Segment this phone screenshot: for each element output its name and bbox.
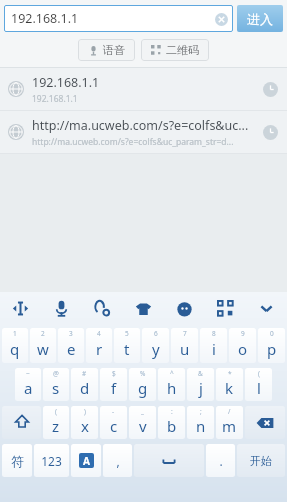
button[interactable]: # (71, 368, 98, 401)
staticText: ^ (170, 369, 174, 378)
staticText: z (52, 416, 60, 436)
staticText: _ (141, 407, 144, 416)
staticText: n (196, 416, 206, 436)
staticText: ; (200, 407, 202, 416)
staticText: b (167, 416, 177, 436)
staticText: 192.168.1.1 (32, 74, 100, 91)
staticText: 二维码 (166, 43, 199, 57)
staticText: % (140, 369, 146, 378)
button[interactable]: Fill in (257, 119, 283, 145)
staticText: v (139, 416, 147, 436)
staticText: : (171, 407, 173, 416)
staticText: * (228, 369, 232, 378)
staticText: m (222, 416, 237, 436)
button[interactable]: 192.168.1.1 (0, 68, 287, 110)
button[interactable]: 1 (2, 328, 28, 363)
staticText: / (228, 407, 231, 416)
button[interactable]: 6 (142, 328, 169, 363)
staticText: u (180, 339, 190, 359)
staticText: j (199, 378, 203, 398)
button[interactable]: % (129, 368, 156, 401)
staticText: A (83, 454, 90, 468)
staticText: e (67, 339, 76, 359)
button[interactable]: Language (71, 444, 101, 477)
staticText: 6 (154, 329, 158, 338)
button[interactable]: ( (245, 368, 272, 401)
button[interactable]: 符 (2, 444, 32, 477)
button[interactable]: 5 (114, 328, 140, 363)
button[interactable]: - (100, 406, 127, 439)
button[interactable]: 2 (30, 328, 56, 363)
staticText: ~ (26, 369, 30, 378)
button[interactable]: Attach (82, 292, 123, 325)
button[interactable]: . (206, 444, 235, 477)
button[interactable]: Fill in (257, 76, 283, 102)
staticText: ( (55, 407, 57, 416)
button[interactable]: 0 (258, 328, 285, 363)
staticText: k (225, 378, 234, 398)
staticText: q (10, 339, 20, 359)
staticText: s (52, 378, 60, 398)
button[interactable]: : (158, 406, 185, 439)
button[interactable]: & (187, 368, 214, 401)
staticText: 192.168.1.1 (32, 93, 78, 105)
button[interactable]: / (216, 406, 243, 439)
button[interactable]: Voice (41, 292, 82, 325)
button[interactable]: 123 (34, 444, 69, 477)
button[interactable]: Hide keyboard (246, 292, 287, 325)
staticText: ( (258, 369, 260, 378)
button[interactable]: ( (43, 406, 69, 439)
button[interactable]: , (103, 444, 132, 477)
staticText: h (167, 378, 177, 398)
button[interactable]: $ (100, 368, 127, 401)
staticText: 开始 (250, 454, 272, 468)
staticText: 9 (241, 329, 245, 338)
button[interactable]: 8 (200, 328, 227, 363)
staticText: - (112, 407, 115, 416)
staticText: i (212, 339, 216, 359)
button[interactable]: Shift (2, 406, 41, 439)
button[interactable]: ; (187, 406, 214, 439)
button[interactable]: 二维码 (151, 39, 199, 61)
staticText: 8 (212, 329, 216, 338)
button[interactable]: 7 (171, 328, 198, 363)
staticText: g (138, 378, 148, 398)
button[interactable]: Space (134, 444, 204, 477)
staticText: ) (84, 407, 86, 416)
button[interactable]: QR code (205, 292, 246, 325)
button[interactable]: Theme (123, 292, 164, 325)
staticText: l (257, 378, 261, 398)
button[interactable]: Emoji (164, 292, 205, 325)
button[interactable]: 3 (58, 328, 84, 363)
staticText: r (96, 339, 103, 359)
button[interactable]: ~ (15, 368, 41, 401)
button[interactable]: ) (71, 406, 98, 439)
button[interactable]: http://ma.ucweb.com/s?e=colfs&uc... (0, 111, 287, 153)
button[interactable]: 4 (86, 328, 112, 363)
staticText: @ (53, 369, 59, 378)
staticText: http://ma.ucweb.com/s?e=colfs&uc_param_s… (32, 136, 234, 148)
staticText: o (238, 339, 248, 359)
staticText: 4 (97, 329, 101, 338)
button[interactable]: 开始 (237, 444, 285, 477)
staticText: y (152, 339, 160, 359)
button[interactable]: _ (129, 406, 156, 439)
staticText: 进入 (247, 11, 273, 27)
button[interactable]: Clear (214, 12, 228, 26)
staticText: 语音 (103, 43, 125, 57)
staticText: 5 (125, 329, 129, 338)
button[interactable]: Cursor (0, 292, 41, 325)
button[interactable]: @ (43, 368, 69, 401)
button[interactable]: ^ (158, 368, 185, 401)
staticText: f (111, 378, 117, 398)
staticText: 192.168.1.1 (11, 10, 79, 27)
button[interactable]: 192.168.1.1 (4, 5, 233, 32)
button[interactable]: 语音 (88, 39, 125, 61)
button[interactable]: 9 (229, 328, 256, 363)
staticText: 2 (41, 329, 45, 338)
button[interactable]: 进入 (237, 5, 283, 32)
button[interactable]: Backspace (245, 406, 285, 439)
button[interactable]: * (216, 368, 243, 401)
staticText: 3 (69, 329, 73, 338)
staticText: http://ma.ucweb.com/s?e=colfs&uc... (32, 117, 249, 134)
